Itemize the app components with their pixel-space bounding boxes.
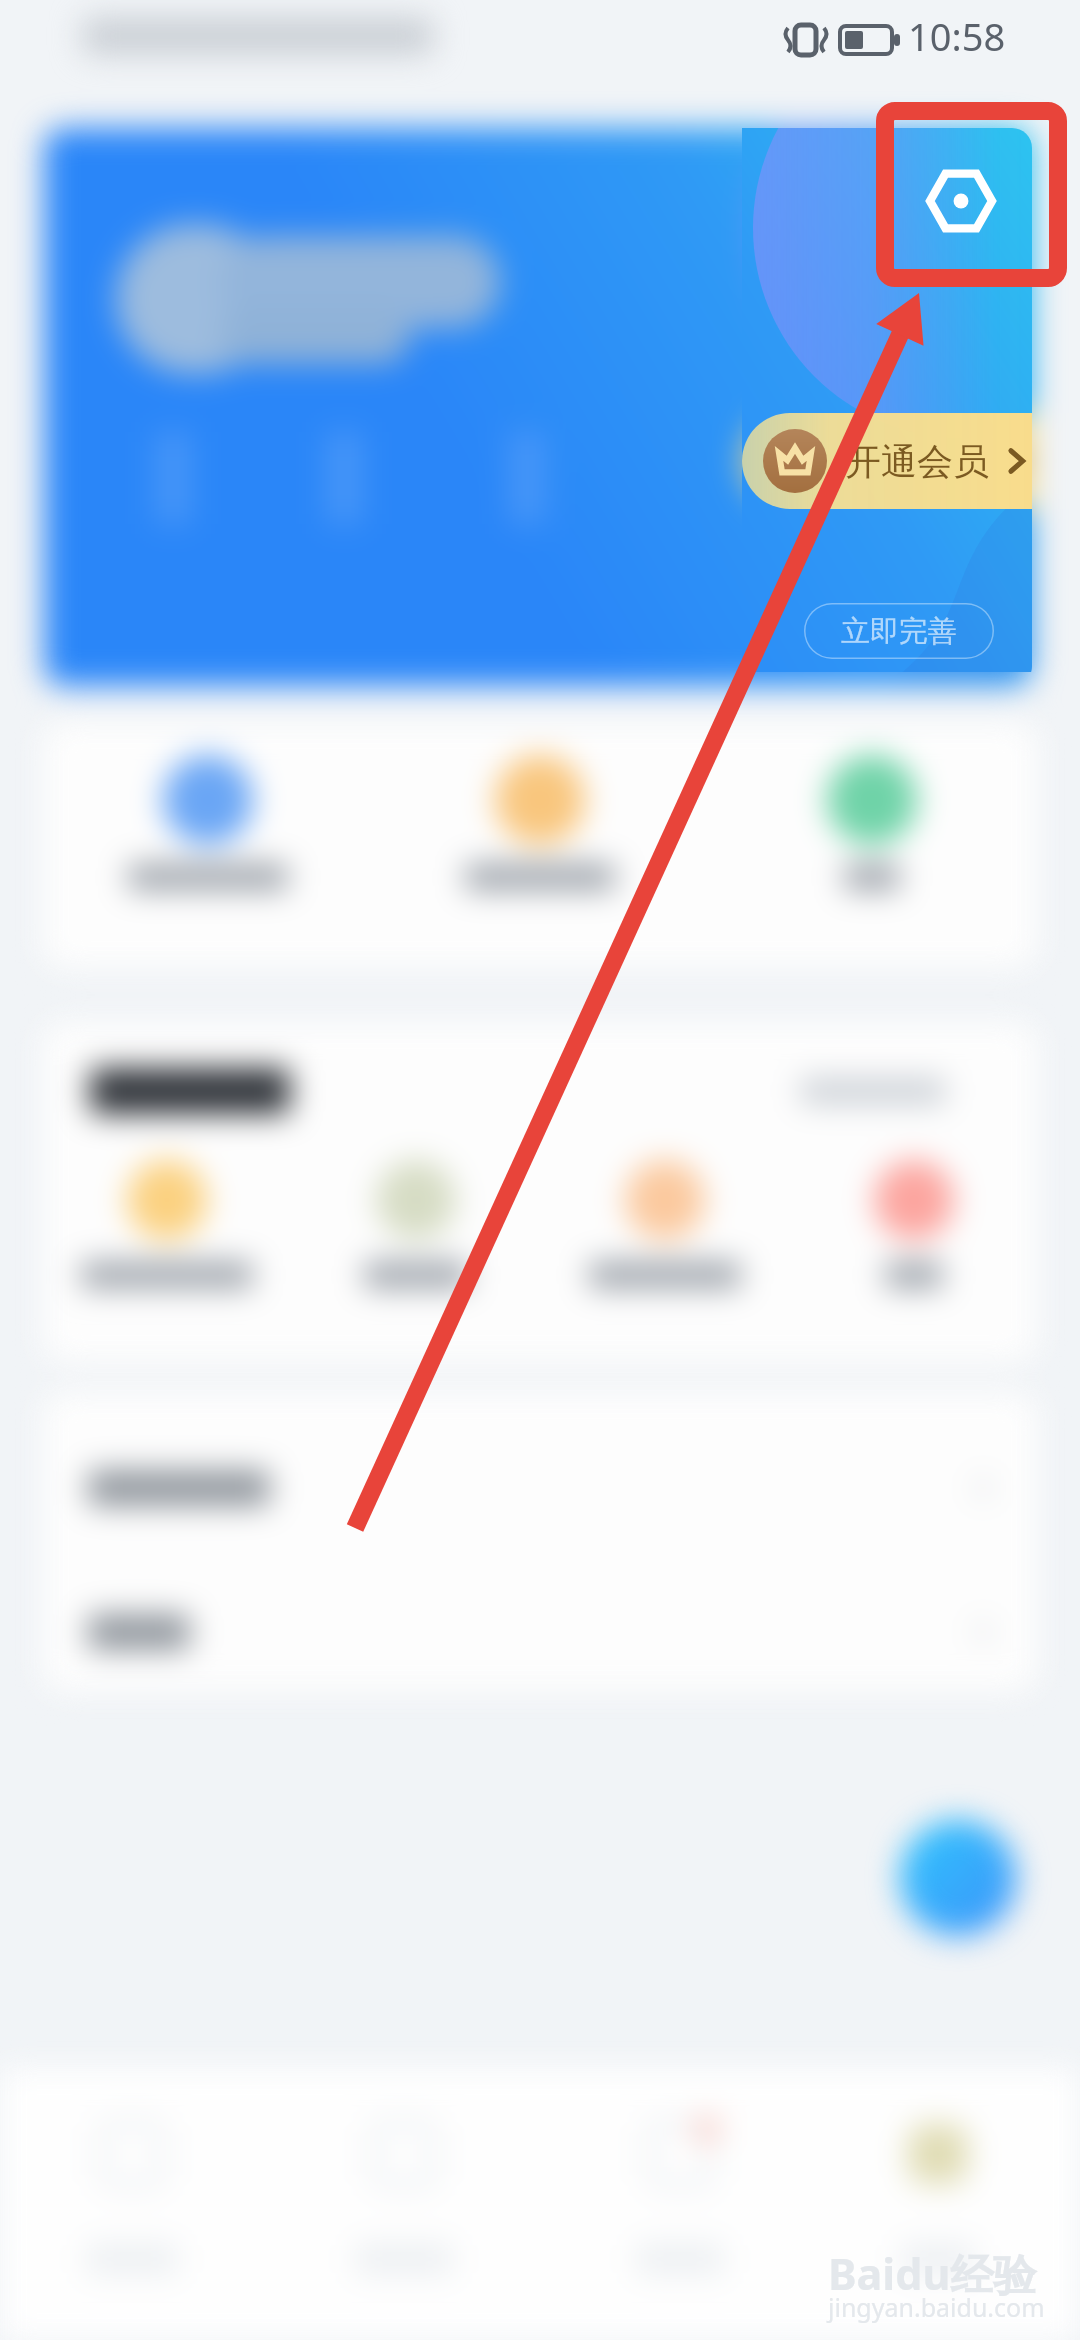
button[interactable]: 立即完善 — [804, 603, 994, 659]
button[interactable]: Add — [900, 1820, 1016, 1936]
staticText: 开通会员 — [845, 439, 989, 484]
button[interactable] — [291, 1160, 540, 1288]
staticText: Baidu经验 — [828, 2244, 1037, 2303]
staticText: jingyan.baidu.com — [828, 2290, 1045, 2324]
button[interactable] — [868, 2084, 1008, 2284]
button[interactable]: 开通会员 — [742, 413, 1032, 509]
button[interactable] — [42, 1160, 291, 1288]
button[interactable] — [789, 1160, 1038, 1288]
button[interactable] — [88, 1416, 996, 1560]
button[interactable] — [88, 1560, 996, 1692]
button[interactable] — [706, 722, 1038, 968]
button[interactable]: 立即完善 — [804, 603, 994, 659]
button[interactable] — [374, 722, 706, 968]
button[interactable]: Settings — [905, 145, 1017, 257]
staticText: 开通会员 — [845, 439, 989, 484]
button[interactable]: Settings — [905, 145, 1017, 257]
button[interactable] — [610, 2084, 750, 2284]
button[interactable] — [540, 1160, 789, 1288]
staticText: 10:58 — [908, 10, 1006, 62]
staticText: 立即完善 — [841, 613, 957, 650]
button[interactable] — [42, 722, 374, 968]
staticText: 立即完善 — [841, 613, 957, 650]
button[interactable]: 开通会员 — [742, 413, 1032, 509]
